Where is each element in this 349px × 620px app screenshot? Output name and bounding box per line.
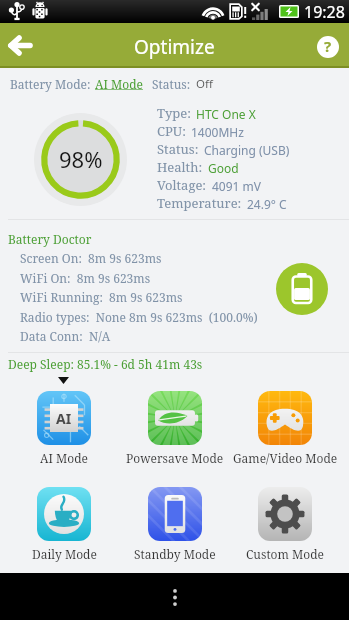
button[interactable]: Custom Mode — [230, 487, 340, 562]
staticText: AI Mode — [40, 450, 88, 466]
staticText: Status: — [152, 76, 191, 92]
staticText: AI — [56, 409, 72, 428]
staticText: Voltage: — [157, 176, 207, 194]
staticText: Standby Mode — [134, 546, 216, 562]
staticText: WiFi On: 8m 9s 623ms — [20, 270, 151, 286]
staticText: Powersave Mode — [126, 450, 224, 466]
staticText: Custom Mode — [246, 546, 324, 562]
staticText: 1400MHz — [191, 124, 244, 140]
button[interactable]: Game/Video Mode — [230, 391, 340, 466]
staticText: Status: — [157, 140, 199, 158]
staticText: Good — [208, 160, 239, 176]
staticText: Health: — [157, 158, 203, 176]
staticText: 98% — [59, 144, 103, 174]
button[interactable]: Back — [1, 26, 39, 64]
staticText: HTC One X — [196, 106, 256, 122]
button[interactable]: AI Mode — [95, 76, 143, 92]
button[interactable]: Powersave Mode — [120, 391, 230, 466]
staticText: 19:28 — [304, 1, 345, 23]
staticText: Type: — [157, 104, 191, 122]
staticText: Daily Mode — [32, 546, 97, 562]
staticText: 4091 mV — [212, 178, 261, 194]
button[interactable]: AI — [9, 391, 119, 466]
staticText: Battery Doctor — [8, 231, 92, 247]
staticText: Off — [196, 76, 213, 92]
staticText: ? — [324, 36, 332, 56]
staticText: Battery Mode: — [10, 76, 91, 92]
staticText: AI Mode — [95, 76, 143, 92]
staticText: WiFi Running: 8m 9s 623ms — [20, 289, 183, 305]
button[interactable]: More options — [155, 577, 195, 617]
button[interactable]: Battery health — [276, 263, 328, 315]
staticText: Deep Sleep: 85.1% - 6d 5h 41m 43s — [8, 356, 203, 372]
staticText: 24.9° C — [247, 196, 287, 212]
staticText: Charging (USB) — [204, 142, 290, 158]
staticText: CPU: — [157, 122, 186, 140]
staticText: Temperature: — [157, 194, 242, 212]
button[interactable]: Daily Mode — [9, 487, 119, 562]
staticText: Screen On: 8m 9s 623ms — [20, 250, 162, 266]
staticText: Data Conn: N/A — [20, 328, 111, 344]
button[interactable]: Standby Mode — [120, 487, 230, 562]
button[interactable]: Help — [317, 36, 339, 58]
staticText: Game/Video Mode — [233, 450, 338, 466]
staticText: Radio types: None 8m 9s 623ms (100.0%) — [20, 309, 258, 325]
staticText: Optimize — [134, 34, 215, 60]
